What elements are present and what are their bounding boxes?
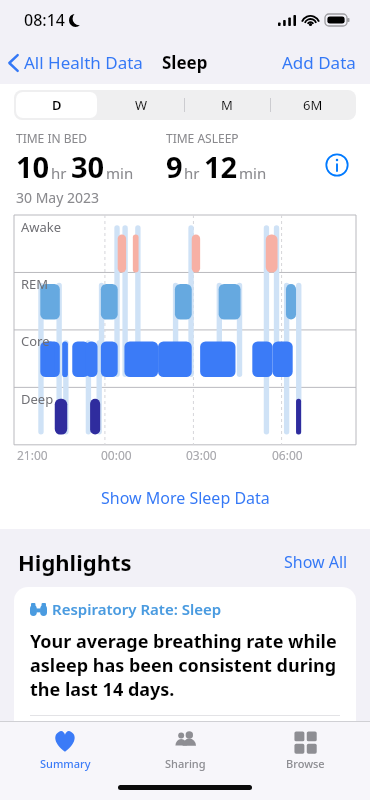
button[interactable]: All Health Data — [0, 45, 151, 80]
staticText: Awake — [21, 218, 62, 236]
staticText: All Health Data — [24, 51, 143, 74]
staticText: Sharing — [165, 756, 206, 771]
staticText: 03:00 — [186, 447, 217, 463]
button[interactable]: Summary — [10, 722, 120, 774]
staticText: 12 — [204, 147, 238, 186]
staticText: Sleep — [162, 51, 208, 74]
staticText: hr — [184, 163, 200, 183]
staticText: Show All — [284, 551, 348, 573]
staticText: Your average breathing rate while asleep… — [30, 629, 340, 701]
staticText: Highlights — [18, 547, 132, 577]
staticText: min — [239, 163, 267, 183]
button[interactable]: Add Data — [268, 43, 370, 82]
staticText: Browse — [286, 756, 325, 771]
button[interactable]: W — [99, 90, 184, 120]
staticText: W — [135, 96, 148, 114]
staticText: M — [221, 96, 233, 114]
staticText: Respiratory Rate: Sleep — [52, 599, 222, 619]
staticText: hr — [51, 163, 67, 183]
button[interactable]: Respiratory Rate: Sleep — [14, 587, 356, 732]
staticText: D — [52, 96, 62, 114]
staticText: Add Data — [282, 51, 356, 74]
button[interactable]: Show More Sleep Data — [0, 481, 370, 515]
staticText: 06:00 — [272, 447, 303, 463]
staticText: 9 — [166, 147, 183, 186]
button[interactable]: About sleep data — [320, 148, 354, 182]
staticText: 00:00 — [101, 447, 132, 463]
staticText: 10 — [16, 147, 50, 186]
staticText: 21:00 — [17, 447, 48, 463]
staticText: min — [106, 163, 134, 183]
staticText: Summary — [40, 756, 91, 771]
staticText: 6M — [303, 96, 323, 114]
staticText: 30 May 2023 — [16, 188, 100, 207]
staticText: REM — [21, 275, 49, 293]
staticText: Show More Sleep Data — [101, 487, 270, 509]
staticText: Deep — [21, 390, 54, 408]
staticText: Core — [21, 332, 50, 350]
staticText: 30 — [71, 147, 105, 186]
button[interactable]: Sharing — [130, 722, 240, 774]
button[interactable]: D — [14, 90, 99, 120]
button[interactable]: Show All — [280, 547, 352, 577]
staticText: TIME IN BED — [16, 130, 87, 146]
button[interactable]: 6M — [270, 90, 356, 120]
staticText: TIME ASLEEP — [166, 130, 239, 146]
button[interactable]: Browse — [250, 722, 360, 774]
button[interactable]: M — [184, 90, 270, 120]
staticText: 08:14 — [24, 9, 65, 31]
